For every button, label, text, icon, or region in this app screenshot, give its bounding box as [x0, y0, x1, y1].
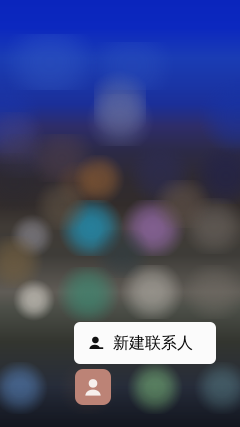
- button[interactable]: Contacts: [75, 369, 111, 405]
- button[interactable]: 新建联系人: [74, 322, 216, 364]
- staticText: 新建联系人: [113, 333, 193, 353]
